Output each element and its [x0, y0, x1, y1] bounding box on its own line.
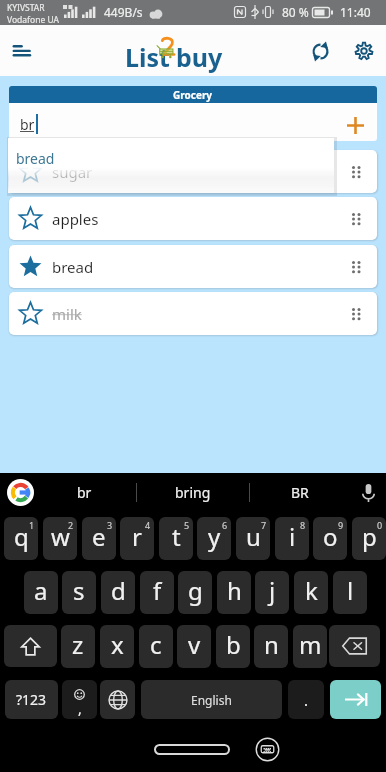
staticText: milk [52, 304, 82, 324]
button[interactable]: u [236, 517, 270, 560]
button[interactable]: Sync [301, 32, 339, 70]
button[interactable]: Google Search [7, 479, 34, 506]
staticText: KYIVSTAR [7, 2, 45, 14]
staticText: 80 % [282, 4, 309, 20]
button[interactable]: z [61, 625, 95, 668]
staticText: 5 [184, 519, 190, 531]
button[interactable]: o [313, 517, 347, 560]
staticText: 8 [300, 519, 306, 531]
staticText: 3 [107, 519, 113, 531]
button[interactable]: n [254, 625, 288, 668]
button[interactable]: h [217, 571, 251, 614]
button[interactable]: Settings [345, 32, 383, 70]
button[interactable]: Voice input [354, 479, 382, 507]
staticText: y [208, 520, 221, 553]
staticText: k [305, 574, 318, 607]
button[interactable]: e [82, 517, 116, 560]
staticText: d [111, 574, 126, 607]
staticText: bread [52, 257, 94, 277]
staticText: apples [52, 209, 99, 229]
button[interactable]: m [293, 625, 327, 668]
button[interactable]: Emoji and comma [62, 680, 97, 719]
button[interactable]: f [140, 571, 174, 614]
staticText: v [188, 628, 201, 661]
staticText: a [34, 574, 48, 607]
button[interactable]: English [141, 680, 282, 719]
button[interactable]: p [352, 517, 386, 560]
staticText: g [188, 574, 203, 607]
button[interactable]: bring [137, 473, 249, 512]
staticText: 7 [261, 519, 267, 531]
button[interactable]: Shift [4, 625, 57, 667]
staticText: Grocery [173, 88, 213, 102]
button[interactable]: b [216, 625, 250, 668]
staticText: p [362, 520, 377, 553]
staticText: br [20, 115, 35, 134]
staticText: Vodafone UA [7, 14, 59, 26]
staticText: l [347, 574, 354, 607]
button[interactable]: q [4, 517, 38, 560]
button[interactable]: g [178, 571, 212, 614]
button[interactable]: bread [8, 138, 334, 193]
button[interactable]: ?123 [5, 680, 58, 719]
button[interactable]: apples [9, 197, 377, 240]
staticText: buy [176, 40, 223, 74]
staticText: , [78, 699, 82, 718]
button[interactable]: d [101, 571, 135, 614]
staticText: List [125, 40, 170, 74]
button[interactable]: bread [9, 245, 377, 288]
staticText: z [72, 628, 84, 661]
staticText: i [289, 520, 296, 553]
button[interactable]: t [159, 517, 193, 560]
button[interactable]: milk [9, 292, 377, 335]
button[interactable]: v [177, 625, 211, 668]
button[interactable]: Grocery [9, 86, 377, 103]
button[interactable]: i [275, 517, 309, 560]
button[interactable]: Menu [0, 29, 44, 73]
button[interactable]: Home [154, 744, 230, 755]
staticText: 1 [29, 519, 35, 531]
button[interactable]: Backspace [329, 625, 380, 667]
staticText: . [304, 690, 309, 710]
button[interactable]: Change language [100, 680, 135, 719]
staticText: b [226, 628, 241, 661]
button[interactable]: . [288, 680, 324, 719]
button[interactable]: sugar [9, 150, 377, 193]
staticText: t [172, 520, 181, 553]
staticText: 4 [145, 519, 151, 531]
staticText: 449B/s [104, 4, 143, 20]
staticText: sugar [52, 162, 93, 182]
button[interactable]: BR [250, 473, 350, 512]
button[interactable]: Add item [336, 106, 374, 141]
staticText: e [92, 520, 106, 553]
button[interactable]: Hide keyboard [255, 737, 280, 762]
staticText: c [150, 628, 162, 661]
button[interactable]: c [139, 625, 173, 668]
staticText: h [227, 574, 242, 607]
staticText: bring [175, 483, 211, 502]
staticText: q [14, 520, 29, 553]
staticText: 6 [222, 519, 228, 531]
button[interactable]: s [62, 571, 96, 614]
button[interactable]: a [24, 571, 58, 614]
button[interactable]: Enter [330, 680, 381, 719]
staticText: BR [291, 483, 309, 502]
button[interactable]: k [294, 571, 328, 614]
staticText: w [51, 520, 70, 553]
button[interactable]: br [37, 473, 131, 512]
staticText: x [111, 628, 124, 661]
button[interactable]: x [100, 625, 134, 668]
staticText: f [153, 574, 162, 607]
staticText: 2 [68, 519, 74, 531]
staticText: br [77, 483, 92, 502]
button[interactable]: y [197, 517, 231, 560]
button[interactable]: j [255, 571, 289, 614]
staticText: o [323, 520, 338, 553]
button[interactable]: w [43, 517, 77, 560]
button[interactable]: l [333, 571, 367, 614]
staticText: ?123 [16, 690, 47, 709]
button[interactable]: r [120, 517, 154, 560]
staticText: u [246, 520, 261, 553]
staticText: r [132, 520, 142, 553]
staticText: s [73, 574, 85, 607]
